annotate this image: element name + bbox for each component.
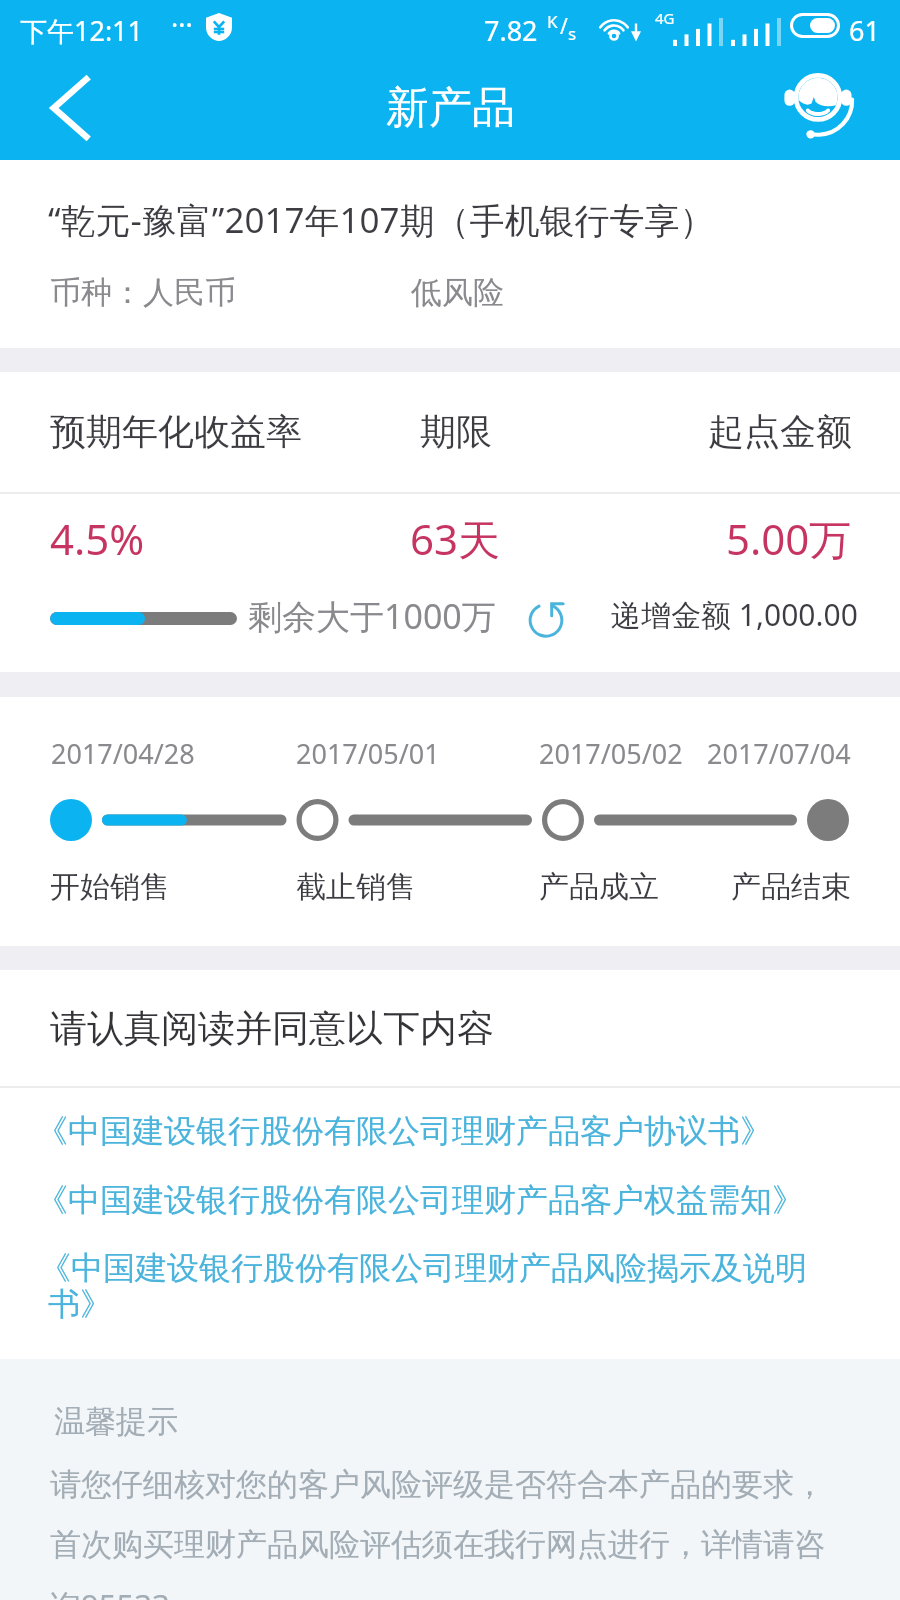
staticText: 《中国建设银行股份有限公司理财产品客户协议书》 — [36, 1111, 772, 1151]
staticText: 下午12:11 — [20, 12, 144, 49]
staticText: 4.5% — [50, 510, 145, 567]
staticText: 《中国建设银行股份有限公司理财产品风险揭示及说明 — [39, 1248, 807, 1288]
staticText: 产品结束 — [731, 868, 851, 906]
staticText: 递增金额 1,000.00 — [611, 594, 858, 635]
staticText: 剩余大于1000万 — [248, 593, 496, 639]
staticText: 2017/05/02 — [539, 735, 683, 772]
staticText: “乾元-豫富”2017年107期（手机银行专享） — [48, 196, 715, 244]
staticText: 63天 — [410, 510, 501, 567]
staticText: 5.00万 — [726, 510, 852, 567]
staticText: 61 — [849, 12, 880, 49]
button[interactable]: Customer service — [768, 56, 872, 160]
staticText: 请您仔细核对您的客户风险评级是否符合本产品的要求，首次购买理财产品风险评估须在我… — [50, 1465, 850, 1600]
staticText: s — [568, 22, 577, 45]
staticText: / — [560, 12, 568, 41]
staticText: 《中国建设银行股份有限公司理财产品客户权益需知》 — [36, 1180, 804, 1220]
button[interactable]: 请认真阅读并同意以下内容 — [0, 1005, 900, 1052]
staticText: 7.82 — [484, 12, 538, 49]
staticText: 截止销售 — [296, 868, 416, 906]
staticText: 开始销售 — [50, 868, 170, 906]
staticText: 2017/07/04 — [707, 735, 851, 772]
staticText: 预期年化收益率 — [50, 409, 302, 454]
staticText: 期限 — [420, 409, 492, 454]
button[interactable]: Refresh — [522, 594, 570, 642]
staticText: 币种：人民币 — [50, 273, 236, 312]
staticText: 新产品 — [386, 81, 515, 135]
staticText: 起点金额 — [708, 409, 852, 454]
button[interactable]: 《中国建设银行股份有限公司理财产品客户协议书》 — [0, 1098, 900, 1164]
staticText: ··· — [171, 6, 193, 43]
staticText: 书》 — [48, 1284, 112, 1324]
staticText: 2017/04/28 — [51, 735, 195, 772]
staticText: 请认真阅读并同意以下内容 — [50, 1005, 494, 1052]
staticText: 产品成立 — [539, 868, 659, 906]
button[interactable]: 《中国建设银行股份有限公司理财产品客户权益需知》 — [0, 1167, 900, 1233]
staticText: 2017/05/01 — [296, 735, 440, 772]
staticText: 4G — [655, 8, 675, 28]
staticText: 低风险 — [411, 273, 504, 312]
button[interactable]: 《中国建设银行股份有限公司理财产品风险揭示及说明 — [0, 1236, 900, 1342]
staticText: K — [547, 10, 558, 33]
staticText: 温馨提示 — [54, 1402, 178, 1441]
button[interactable]: Back — [0, 56, 140, 160]
